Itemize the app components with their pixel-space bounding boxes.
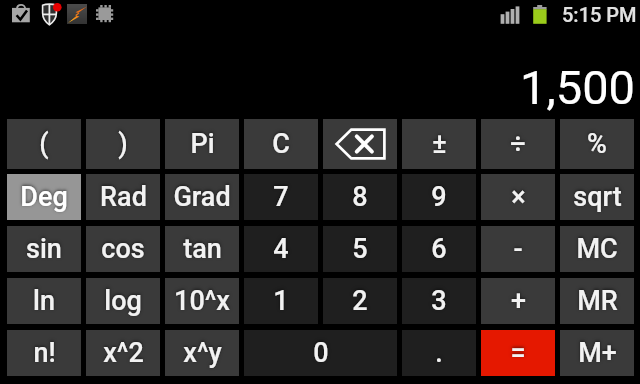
button[interactable]: sqrt <box>560 174 634 220</box>
button[interactable]: - <box>481 226 555 272</box>
staticText: ± <box>432 128 447 160</box>
staticText: × <box>511 181 526 213</box>
button[interactable]: MC <box>560 226 634 272</box>
button[interactable]: × <box>481 174 555 220</box>
button[interactable]: Grad <box>165 174 239 220</box>
button[interactable]: 0 <box>244 330 397 376</box>
staticText: MR <box>577 285 618 317</box>
button[interactable]: 7 <box>244 174 318 220</box>
staticText: MC <box>576 233 618 265</box>
staticText: 10^x <box>174 285 230 317</box>
staticText: sin <box>26 233 62 265</box>
staticText: Grad <box>173 181 231 213</box>
staticText: 3 <box>431 285 447 317</box>
staticText: log <box>104 285 142 317</box>
button[interactable]: = <box>481 330 555 376</box>
button[interactable]: 6 <box>402 226 476 272</box>
button[interactable]: x^2 <box>86 330 160 376</box>
button[interactable]: Backspace <box>323 119 397 169</box>
staticText: Pi <box>190 128 215 160</box>
button[interactable]: tan <box>165 226 239 272</box>
button[interactable]: M+ <box>560 330 634 376</box>
button[interactable]: log <box>86 278 160 324</box>
staticText: ) <box>118 128 128 160</box>
button[interactable]: 8 <box>323 174 397 220</box>
button[interactable]: n! <box>7 330 81 376</box>
staticText: sqrt <box>573 181 622 213</box>
staticText: 2 <box>352 285 368 317</box>
staticText: x^2 <box>103 337 144 369</box>
button[interactable]: Deg <box>7 174 81 220</box>
button[interactable]: 3 <box>402 278 476 324</box>
button[interactable]: ( <box>7 119 81 169</box>
staticText: tan <box>183 233 222 265</box>
button[interactable]: sin <box>7 226 81 272</box>
staticText: x^y <box>183 337 222 369</box>
staticText: % <box>587 128 607 160</box>
staticText: - <box>513 233 523 265</box>
staticText: Rad <box>100 181 147 213</box>
staticText: + <box>511 285 526 317</box>
staticText: 4 <box>273 233 289 265</box>
button[interactable]: C <box>244 119 318 169</box>
other: Backspace <box>335 128 386 160</box>
button[interactable]: + <box>481 278 555 324</box>
staticText: 8 <box>352 181 368 213</box>
button[interactable]: ÷ <box>481 119 555 169</box>
staticText: C <box>272 128 290 160</box>
staticText: 7 <box>273 181 289 213</box>
button[interactable]: Rad <box>86 174 160 220</box>
button[interactable]: Pi <box>165 119 239 169</box>
button[interactable]: . <box>402 330 476 376</box>
staticText: M+ <box>578 337 617 369</box>
staticText: 1,500 <box>0 60 635 115</box>
staticText: 0 <box>313 337 329 369</box>
staticText: cos <box>101 233 145 265</box>
staticText: ( <box>39 128 49 160</box>
staticText: . <box>435 337 443 369</box>
staticText: = <box>510 337 526 369</box>
staticText: ln <box>33 285 55 317</box>
button[interactable]: 2 <box>323 278 397 324</box>
button[interactable]: 5 <box>323 226 397 272</box>
staticText: ÷ <box>510 128 526 160</box>
staticText: 6 <box>431 233 447 265</box>
button[interactable]: cos <box>86 226 160 272</box>
staticText: 5:15 PM <box>562 3 637 26</box>
button[interactable]: ln <box>7 278 81 324</box>
button[interactable]: 9 <box>402 174 476 220</box>
staticText: 9 <box>431 181 447 213</box>
button[interactable]: x^y <box>165 330 239 376</box>
staticText: 5 <box>352 233 368 265</box>
staticText: 1 <box>273 285 289 317</box>
button[interactable]: 1 <box>244 278 318 324</box>
button[interactable]: % <box>560 119 634 169</box>
staticText: n! <box>33 337 56 369</box>
button[interactable]: ± <box>402 119 476 169</box>
button[interactable]: ) <box>86 119 160 169</box>
staticText: Deg <box>20 181 68 213</box>
button[interactable]: 10^x <box>165 278 239 324</box>
button[interactable]: 4 <box>244 226 318 272</box>
button[interactable]: MR <box>560 278 634 324</box>
